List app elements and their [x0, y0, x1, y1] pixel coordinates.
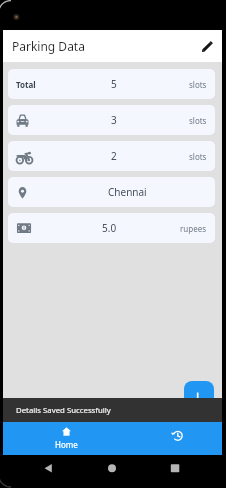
button[interactable]: Home — [3, 422, 122, 455]
staticText: rupees — [180, 223, 207, 234]
staticText: slots — [189, 115, 207, 126]
button[interactable]: Chennai — [8, 177, 215, 207]
staticText: 2 — [111, 149, 117, 163]
button[interactable]: Edit — [196, 34, 220, 58]
staticText: 5 — [111, 77, 117, 91]
staticText: Details Saved Successfully — [16, 405, 111, 416]
button[interactable]: Total — [8, 69, 215, 99]
staticText: Total — [16, 79, 36, 90]
staticText: Chennai — [108, 185, 147, 199]
staticText: 5.0 — [102, 221, 117, 235]
button[interactable]: 3 — [8, 105, 215, 135]
button[interactable]: Add — [184, 381, 214, 411]
staticText: Parking Data — [12, 38, 85, 54]
staticText: slots — [189, 151, 207, 162]
button[interactable]: 5.0 — [8, 213, 215, 243]
staticText: Home — [55, 439, 78, 450]
staticText: 3 — [111, 113, 117, 127]
button[interactable]: 2 — [8, 141, 215, 171]
button[interactable]: History — [122, 422, 222, 455]
staticText: slots — [189, 79, 207, 90]
